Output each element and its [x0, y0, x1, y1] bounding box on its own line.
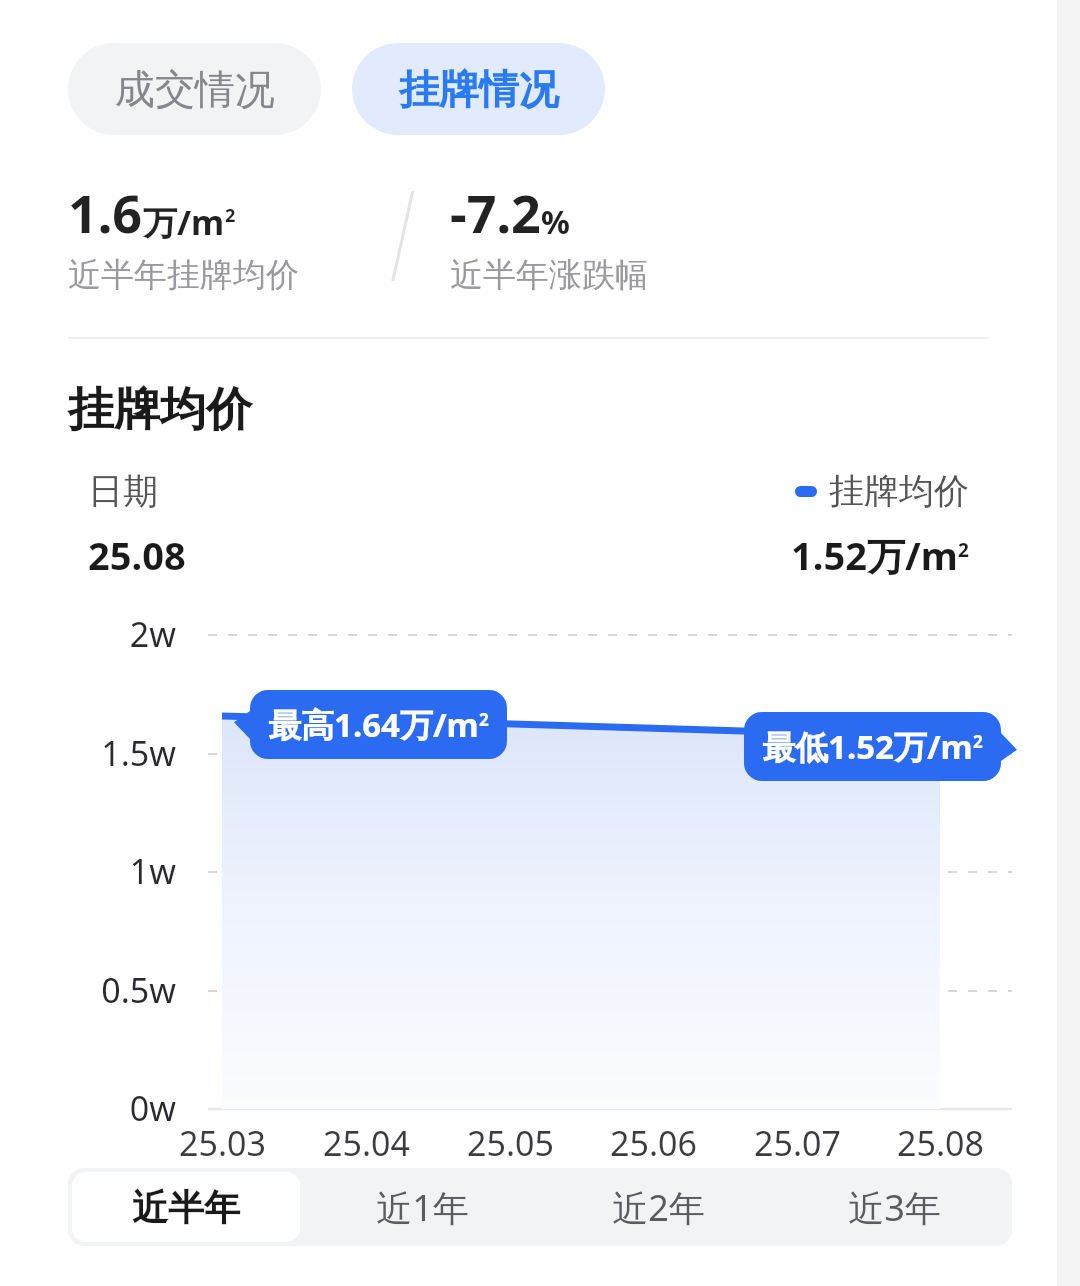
staticText: 25.06 — [610, 1120, 697, 1166]
staticText: 1.5w — [101, 730, 176, 776]
staticText: 25.03 — [179, 1120, 266, 1166]
staticText: 1.6 — [68, 177, 143, 248]
button[interactable]: 近半年 — [72, 1172, 300, 1242]
staticText: 近1年 — [376, 1183, 469, 1232]
button[interactable]: 成交情况 — [68, 43, 321, 135]
staticText: 最高1.64万/m — [268, 702, 479, 747]
staticText: 挂牌情况 — [399, 64, 559, 114]
staticText: 最低1.52万/m — [762, 724, 973, 769]
staticText: 25.04 — [323, 1120, 410, 1166]
button[interactable]: 近1年 — [308, 1172, 536, 1242]
staticText: 0w — [129, 1085, 176, 1131]
button[interactable]: 近3年 — [780, 1172, 1008, 1242]
staticText: 成交情况 — [115, 64, 275, 114]
staticText: -7.2 — [450, 177, 541, 248]
staticText: 1.52万/m — [791, 529, 958, 581]
staticText: 挂牌均价 — [829, 469, 969, 513]
staticText: 挂牌均价 — [68, 381, 252, 439]
button[interactable]: 挂牌情况 — [352, 43, 605, 135]
other: 挂牌均价折线图 — [0, 615, 1057, 1162]
button[interactable]: 近2年 — [544, 1172, 772, 1242]
staticText: 2w — [129, 611, 176, 657]
staticText: 2 — [479, 708, 489, 731]
staticText: 25.08 — [897, 1120, 984, 1166]
staticText: 2 — [958, 537, 969, 563]
staticText: 近3年 — [848, 1183, 941, 1232]
staticText: 0.5w — [101, 967, 176, 1013]
staticText: 1w — [129, 848, 176, 894]
staticText: 25.08 — [88, 529, 186, 581]
staticText: 25.07 — [754, 1120, 841, 1166]
staticText: 万/m — [143, 199, 225, 245]
staticText: 近半年涨跌幅 — [450, 254, 648, 295]
staticText: 日期 — [88, 469, 158, 513]
staticText: 2 — [225, 203, 236, 228]
staticText: 近2年 — [612, 1183, 705, 1232]
staticText: 25.05 — [467, 1120, 554, 1166]
staticText: 2 — [973, 730, 983, 753]
staticText: % — [541, 200, 570, 244]
staticText: 近半年挂牌均价 — [68, 254, 299, 295]
staticText: 近半年 — [132, 1185, 240, 1230]
